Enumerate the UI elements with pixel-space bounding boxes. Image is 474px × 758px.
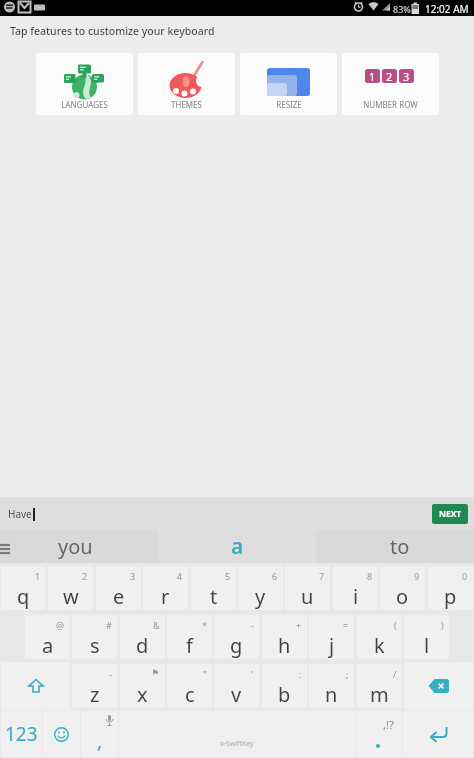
button[interactable]: c bbox=[167, 664, 212, 708]
button[interactable]: q bbox=[1, 566, 46, 610]
staticText: t bbox=[210, 583, 218, 610]
staticText: Have bbox=[8, 507, 32, 521]
staticText: : bbox=[299, 668, 302, 680]
staticText: a bbox=[42, 632, 54, 659]
staticText: # bbox=[106, 619, 112, 631]
button[interactable]: h bbox=[262, 615, 307, 659]
staticText: r bbox=[161, 583, 170, 610]
button[interactable]: v bbox=[214, 664, 259, 708]
staticText: g bbox=[230, 632, 243, 659]
button[interactable]: a bbox=[25, 615, 70, 659]
staticText: - bbox=[109, 668, 112, 680]
button[interactable]: m bbox=[357, 664, 402, 708]
button[interactable] bbox=[1, 662, 70, 710]
staticText: m bbox=[370, 681, 389, 708]
staticText: THEMES bbox=[171, 99, 202, 110]
staticText: NUMBER ROW bbox=[363, 99, 418, 110]
button[interactable]: you bbox=[35, 530, 115, 563]
staticText: h bbox=[278, 632, 291, 659]
staticText: n bbox=[325, 681, 338, 708]
button[interactable]: k bbox=[357, 615, 402, 659]
button[interactable]: a bbox=[197, 530, 277, 563]
button[interactable]: THEMES bbox=[138, 53, 235, 115]
button[interactable] bbox=[404, 662, 473, 710]
button[interactable]: x bbox=[120, 664, 165, 708]
button[interactable]: o bbox=[380, 566, 425, 610]
staticText: you bbox=[58, 533, 93, 560]
button[interactable]: d bbox=[120, 615, 165, 659]
button[interactable]: LANGUAGES bbox=[36, 53, 133, 115]
button[interactable]: 1 bbox=[342, 53, 439, 115]
staticText: w bbox=[63, 583, 79, 610]
button[interactable]: g bbox=[214, 615, 259, 659]
staticText: 4 bbox=[177, 570, 183, 582]
button[interactable]: RESIZE bbox=[240, 53, 337, 115]
button[interactable]: 123 bbox=[1, 711, 42, 757]
staticText: NEXT bbox=[439, 508, 462, 520]
button[interactable] bbox=[43, 711, 80, 757]
button[interactable]: i bbox=[333, 566, 378, 610]
button[interactable]: b bbox=[262, 664, 307, 708]
staticText: + bbox=[296, 619, 302, 631]
staticText: ( bbox=[394, 619, 397, 631]
staticText: 7 bbox=[319, 570, 325, 582]
staticText: x bbox=[137, 681, 148, 708]
staticText: ; bbox=[346, 668, 349, 680]
button[interactable]: r bbox=[143, 566, 188, 610]
staticText: b bbox=[278, 681, 291, 708]
staticText: & bbox=[153, 619, 160, 631]
staticText: a bbox=[231, 532, 244, 561]
staticText: ⊳SwiftKey bbox=[220, 739, 254, 749]
button[interactable]: l bbox=[404, 615, 449, 659]
staticText: 2 bbox=[82, 570, 88, 582]
staticText: k bbox=[374, 632, 385, 659]
staticText: 2 bbox=[386, 69, 393, 83]
staticText: 1 bbox=[369, 69, 376, 83]
staticText: v bbox=[231, 681, 242, 708]
button[interactable]: p bbox=[428, 566, 473, 610]
staticText: ⚑ bbox=[151, 668, 160, 678]
staticText: RESIZE bbox=[276, 99, 302, 110]
staticText: ,!? bbox=[383, 717, 394, 732]
staticText: l bbox=[424, 632, 430, 659]
button[interactable]: y bbox=[238, 566, 283, 610]
staticText: 3 bbox=[403, 69, 410, 83]
button[interactable]: f bbox=[167, 615, 212, 659]
staticText: " bbox=[203, 668, 207, 680]
staticText: p bbox=[444, 583, 457, 610]
staticText: 12:02 AM bbox=[425, 2, 469, 16]
button[interactable] bbox=[0, 530, 14, 563]
button[interactable]: j bbox=[309, 615, 354, 659]
staticText: s bbox=[90, 632, 100, 659]
staticText: z bbox=[90, 681, 100, 708]
staticText: LANGUAGES bbox=[61, 99, 108, 110]
button[interactable]: ⊳SwiftKey bbox=[119, 711, 355, 757]
staticText: * bbox=[202, 619, 207, 631]
button[interactable]: w bbox=[48, 566, 93, 610]
staticText: ) bbox=[441, 619, 444, 631]
button[interactable]: , bbox=[81, 711, 118, 757]
staticText: i bbox=[353, 583, 359, 610]
staticText: f bbox=[186, 632, 193, 659]
staticText: ' bbox=[251, 668, 254, 680]
button[interactable]: n bbox=[309, 664, 354, 708]
button[interactable] bbox=[403, 711, 473, 757]
staticText: 6 bbox=[272, 570, 278, 582]
staticText: q bbox=[17, 583, 30, 610]
button[interactable]: s bbox=[72, 615, 117, 659]
button[interactable]: z bbox=[72, 664, 117, 708]
button[interactable]: to bbox=[360, 530, 440, 563]
button[interactable]: t bbox=[191, 566, 236, 610]
staticText: 0 bbox=[462, 570, 468, 582]
staticText: e bbox=[113, 583, 125, 610]
staticText: Tap features to customize your keyboard bbox=[10, 24, 215, 38]
button[interactable]: NEXT bbox=[432, 504, 468, 524]
button[interactable]: u bbox=[285, 566, 330, 610]
staticText: o bbox=[396, 583, 409, 610]
button[interactable]: e bbox=[96, 566, 141, 610]
staticText: y bbox=[255, 583, 266, 610]
staticText: to bbox=[390, 533, 410, 560]
button[interactable]: ,!? bbox=[356, 711, 402, 757]
staticText: u bbox=[301, 583, 314, 610]
staticText: 5 bbox=[225, 570, 231, 582]
